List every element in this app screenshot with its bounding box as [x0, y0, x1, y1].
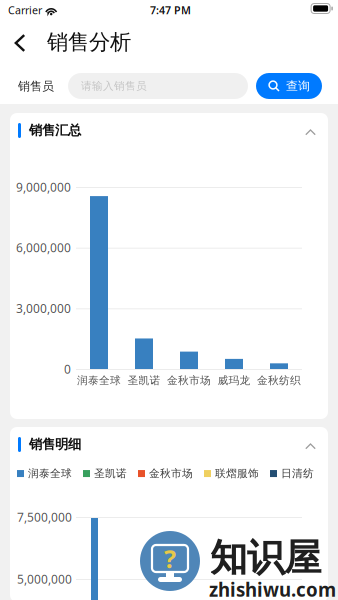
- staticText: 日清纺: [281, 467, 314, 480]
- staticText: 7,500,000: [17, 509, 72, 525]
- staticText: 圣凯诺: [94, 467, 127, 480]
- staticText: 5,000,000: [17, 571, 72, 587]
- staticText: 销售员: [18, 79, 54, 94]
- staticText: 润泰全球: [77, 374, 121, 387]
- button[interactable]: 销售汇总: [10, 113, 328, 143]
- button[interactable]: 查询: [256, 73, 322, 99]
- staticText: 销售明细: [29, 436, 81, 452]
- staticText: 润泰全球: [28, 467, 72, 480]
- staticText: 金秋市场: [149, 467, 193, 480]
- staticText: 销售汇总: [29, 122, 81, 138]
- staticText: 金秋市场: [167, 374, 211, 387]
- button[interactable]: Back: [4, 24, 36, 62]
- staticText: 9,000,000: [16, 179, 71, 195]
- staticText: 销售分析: [47, 29, 131, 55]
- staticText: Carrier: [8, 3, 42, 17]
- staticText: 知识屋: [210, 535, 321, 581]
- staticText: 联熠服饰: [215, 467, 259, 480]
- staticText: 金秋纺织: [257, 374, 301, 387]
- staticText: zhishiwu.com: [209, 577, 336, 600]
- staticText: 6,000,000: [16, 240, 71, 256]
- staticText: 请输入销售员: [81, 79, 147, 92]
- staticText: 7:47 PM: [150, 3, 191, 17]
- staticText: 查询: [286, 79, 310, 93]
- staticText: 0: [64, 361, 71, 377]
- staticText: 圣凯诺: [127, 374, 160, 387]
- staticText: 3,000,000: [16, 300, 71, 316]
- staticText: 威玛龙: [217, 374, 250, 387]
- button[interactable]: 销售明细: [10, 427, 328, 457]
- staticText: ?: [164, 542, 176, 575]
